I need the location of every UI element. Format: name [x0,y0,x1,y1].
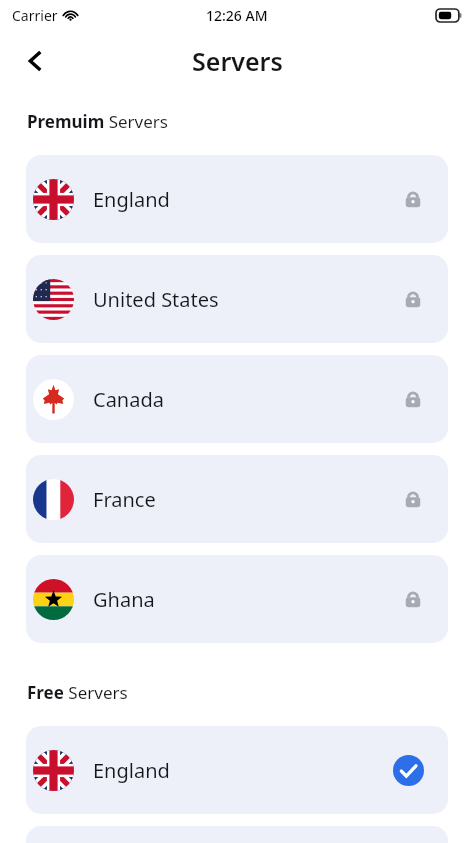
staticText: Canada [93,386,164,413]
other: Locked [402,288,424,310]
staticText: Ghana [93,586,155,613]
staticText: Servers [192,44,283,78]
staticText: United States [93,286,219,313]
staticText: England [93,186,170,213]
other: Locked [402,488,424,510]
button[interactable]: England [26,726,448,814]
staticText: 12:26 AM [206,6,268,25]
other: Locked [402,588,424,610]
button[interactable]: United States [26,255,448,343]
button[interactable]: Canada [26,355,448,443]
staticText: Carrier [12,6,58,25]
other: Locked [402,188,424,210]
other: Selected [393,755,424,786]
button[interactable]: Ghana [26,555,448,643]
button[interactable]: France [26,455,448,543]
button[interactable]: Back [14,39,58,83]
staticText: England [93,757,170,784]
staticText: France [93,486,156,513]
staticText: Free Servers [27,681,128,704]
button[interactable]: England [26,155,448,243]
staticText: Premuim Servers [27,110,168,133]
other: Locked [402,388,424,410]
